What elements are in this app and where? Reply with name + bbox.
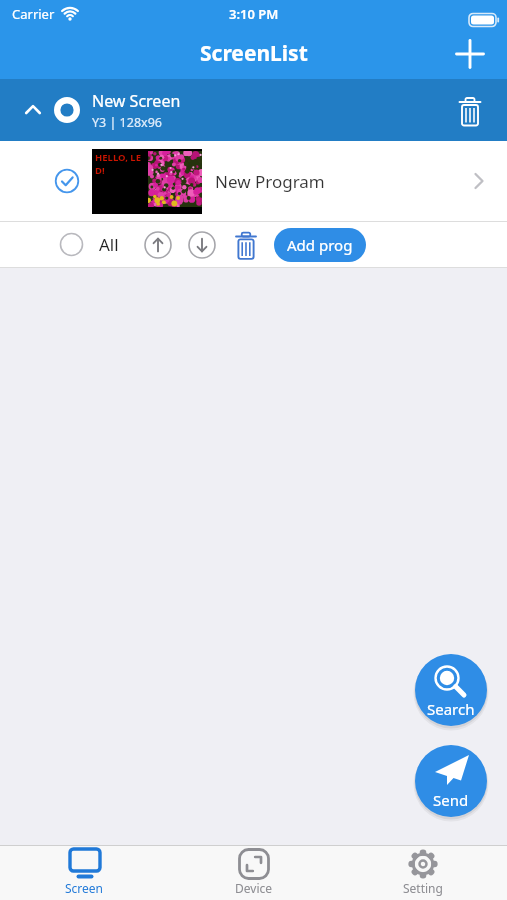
button[interactable] [186,229,218,261]
button[interactable]: Search [415,654,487,726]
button[interactable] [446,86,494,134]
staticText: Carrier [12,5,55,23]
button[interactable]: Setting [338,846,507,900]
staticText: 3:10 PM [229,5,279,23]
button[interactable]: Add prog [274,228,366,262]
staticText: Setting [403,880,443,896]
staticText: Send [433,790,469,810]
staticText: New Program [215,170,325,193]
button[interactable] [448,32,492,76]
button[interactable]: HELLO, LE D! [0,141,507,221]
staticText: Search [427,699,475,719]
staticText: ScreenList [200,39,308,68]
button[interactable] [228,227,264,263]
staticText: New Screen [92,90,181,112]
staticText: Screen [65,880,104,896]
staticText: Y3 | 128x96 [92,114,162,131]
staticText: Device [235,880,273,896]
button[interactable]: New Screen [0,79,507,141]
staticText: All [99,233,119,256]
staticText: HELLO, LE D! [95,151,141,177]
button[interactable]: Send [415,745,487,817]
button[interactable] [142,229,174,261]
button[interactable]: Screen [0,846,169,900]
staticText: Add prog [287,235,353,255]
button[interactable]: Device [169,846,338,900]
button[interactable] [60,233,83,256]
